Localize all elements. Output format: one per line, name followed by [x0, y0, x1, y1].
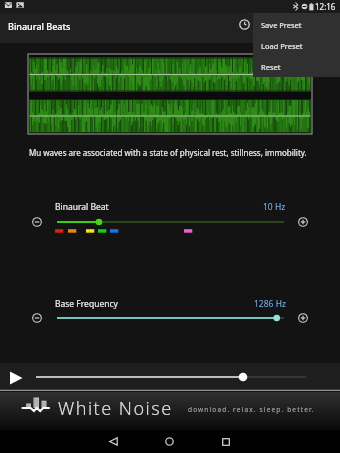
button[interactable]: Save Preset [253, 14, 340, 35]
staticText: White Noise [58, 396, 173, 421]
staticText: Binaural Beats [8, 20, 71, 32]
staticText: Load Preset [261, 41, 303, 51]
staticText: Save Preset [261, 20, 302, 30]
button[interactable]: Home [149, 430, 189, 453]
button[interactable]: Recents [206, 430, 246, 453]
button[interactable]: Reset [253, 56, 340, 77]
staticText: Reset [261, 62, 281, 72]
button[interactable]: Play [4, 366, 28, 390]
button[interactable]: Increase [293, 212, 312, 231]
staticText: Base Frequency [55, 298, 118, 310]
staticText: Mu waves are associated with a state of … [29, 147, 307, 158]
button[interactable]: Increase [293, 308, 312, 327]
button[interactable]: White Noise [0, 392, 340, 430]
staticText: 1286 Hz [254, 298, 286, 310]
staticText: 12:16 [315, 1, 336, 12]
staticText: download. relax. sleep. better. [188, 405, 315, 414]
button[interactable]: Decrease [27, 212, 46, 231]
staticText: Binaural Beat [55, 201, 109, 213]
button[interactable]: Back [93, 430, 133, 453]
button[interactable]: Decrease [27, 308, 46, 327]
button[interactable]: Load Preset [253, 35, 340, 56]
staticText: 10 Hz [263, 201, 286, 213]
button[interactable]: Timer [234, 14, 255, 35]
